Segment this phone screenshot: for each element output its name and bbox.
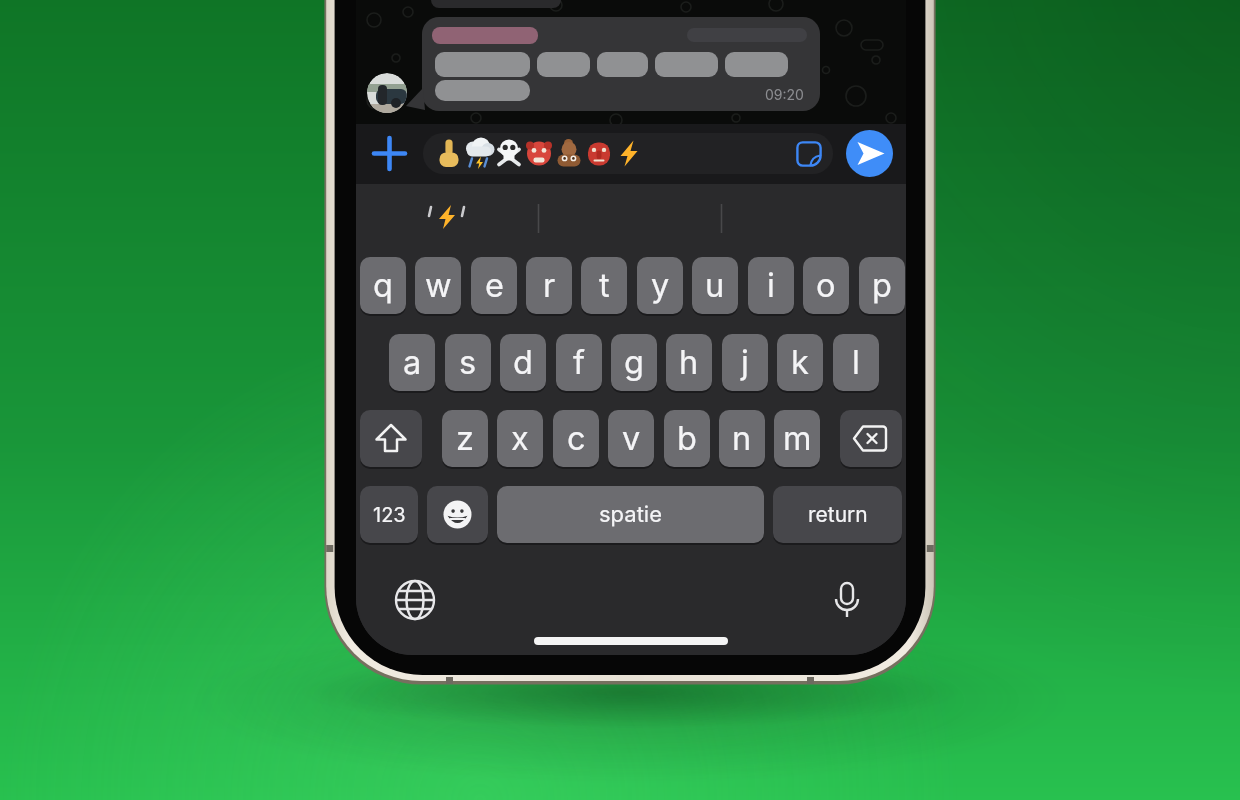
staticText: spatie [599, 501, 663, 528]
button[interactable]: j [722, 334, 768, 391]
button[interactable] [369, 133, 410, 174]
staticText: z [456, 419, 474, 458]
button[interactable]: u [692, 257, 738, 314]
button[interactable]: s [445, 334, 491, 391]
staticText: 123 [373, 503, 406, 527]
button[interactable] [825, 578, 869, 622]
staticText: b [677, 419, 697, 458]
button[interactable] [840, 410, 902, 467]
staticText: f [573, 343, 586, 382]
staticText: a [403, 343, 422, 382]
button[interactable]: spatie [497, 486, 764, 543]
button[interactable]: k [777, 334, 823, 391]
button[interactable]: x [497, 410, 543, 467]
button[interactable] [360, 410, 422, 467]
staticText: u [705, 266, 725, 305]
button[interactable]: a [389, 334, 435, 391]
staticText: h [679, 343, 699, 382]
staticText: y [651, 266, 670, 305]
button[interactable]: return [773, 486, 902, 543]
button[interactable] [423, 133, 833, 174]
staticText: i [767, 266, 775, 305]
button[interactable]: l [833, 334, 879, 391]
button[interactable] [796, 141, 822, 167]
staticText: s [459, 343, 477, 382]
staticText: n [732, 419, 752, 458]
staticText: 09:20 [765, 86, 804, 103]
button[interactable]: v [608, 410, 654, 467]
staticText: p [872, 266, 892, 305]
button[interactable]: i [748, 257, 794, 314]
button[interactable]: e [471, 257, 517, 314]
staticText: q [373, 266, 393, 305]
staticText: t [599, 266, 610, 305]
staticText: k [791, 343, 809, 382]
button[interactable] [393, 578, 437, 622]
staticText: d [513, 343, 533, 382]
staticText: c [567, 419, 586, 458]
staticText: x [511, 419, 529, 458]
button[interactable]: r [526, 257, 572, 314]
button[interactable]: q [360, 257, 406, 314]
button[interactable]: t [581, 257, 627, 314]
staticText: return [808, 502, 868, 527]
button[interactable]: w [415, 257, 461, 314]
button[interactable]: n [719, 410, 765, 467]
staticText: v [622, 419, 641, 458]
staticText: j [741, 343, 749, 382]
button[interactable] [427, 486, 488, 543]
button[interactable]: f [556, 334, 602, 391]
button[interactable]: m [774, 410, 820, 467]
button[interactable]: y [637, 257, 683, 314]
button[interactable] [846, 130, 893, 177]
button[interactable]: c [553, 410, 599, 467]
button[interactable]: 123 [360, 486, 418, 543]
staticText: r [543, 266, 556, 305]
button[interactable]: p [859, 257, 905, 314]
staticText: o [816, 266, 836, 305]
button[interactable]: o [803, 257, 849, 314]
button[interactable]: g [611, 334, 657, 391]
staticText: l [852, 343, 860, 382]
button[interactable]: z [442, 410, 488, 467]
button[interactable]: b [664, 410, 710, 467]
staticText: m [783, 419, 812, 458]
button[interactable]: h [666, 334, 712, 391]
staticText: g [624, 343, 644, 382]
staticText: e [485, 266, 504, 305]
staticText: w [425, 266, 452, 305]
button[interactable]: d [500, 334, 546, 391]
